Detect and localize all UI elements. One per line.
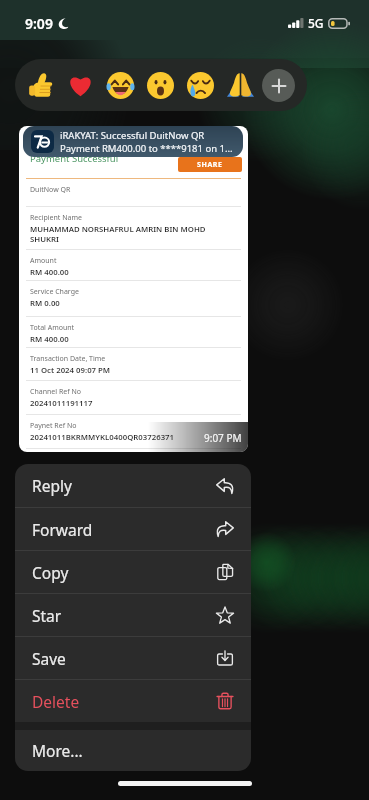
button[interactable]: Delete	[15, 680, 251, 722]
button[interactable]: iRAKYAT: Successful DuitNow QR	[23, 126, 243, 157]
button[interactable]: More reactions	[259, 66, 297, 104]
staticText: Transaction Date, Time	[30, 354, 106, 364]
staticText: SHARE	[197, 160, 223, 170]
button[interactable]: Crying	[180, 65, 220, 105]
staticText: 5G	[308, 15, 324, 31]
staticText: DuitNow QR	[30, 185, 71, 195]
staticText: Payment Successful	[30, 152, 119, 165]
button[interactable]: Star	[15, 594, 251, 636]
staticText: 9:07 PM	[204, 431, 242, 445]
staticText: RM 400.00	[30, 267, 69, 278]
staticText: More...	[32, 740, 83, 761]
staticText: Delete	[32, 691, 80, 712]
button[interactable]: More...	[15, 730, 251, 771]
staticText: Forward	[32, 519, 93, 540]
staticText: Recipient Name	[30, 213, 82, 223]
button[interactable]: Reply	[15, 464, 251, 507]
button[interactable]: Save	[15, 637, 251, 679]
staticText: Total Amount	[30, 323, 75, 333]
staticText: 20241011BKRMMYKL0400QR03726371	[30, 432, 175, 443]
staticText: Paynet Ref No	[30, 421, 77, 431]
staticText: RM 0.00	[30, 298, 60, 309]
button[interactable]: Copy	[15, 551, 251, 593]
staticText: 11 Oct 2024 09:07 PM	[30, 365, 111, 376]
button[interactable]: Laughing	[100, 65, 140, 105]
staticText: Copy	[32, 562, 69, 583]
staticText: Save	[32, 648, 66, 669]
button[interactable]: SHARE	[178, 157, 242, 172]
staticText: Star	[32, 605, 62, 626]
staticText: 20241011191117	[30, 398, 93, 409]
button[interactable]: Heart	[60, 65, 100, 105]
staticText: Amount	[30, 256, 57, 266]
button[interactable]: Thumbs up	[20, 65, 60, 105]
staticText: iRAKYAT: Successful DuitNow QR	[60, 129, 205, 142]
staticText: Channel Ref No	[30, 387, 81, 397]
staticText: RM 400.00	[30, 334, 69, 345]
staticText: MUHAMMAD NORSHAFRUL AMRIN BIN MOHD SHUKR…	[30, 224, 206, 244]
button[interactable]: Thanks	[220, 65, 260, 105]
staticText: Reply	[32, 475, 72, 496]
staticText: 9:09	[25, 14, 53, 33]
staticText: Service Charge	[30, 287, 79, 297]
button[interactable]: Forward	[15, 508, 251, 550]
staticText: Payment RM400.00 to ****9181 on 1...	[60, 142, 233, 155]
button[interactable]: Surprised	[140, 65, 180, 105]
